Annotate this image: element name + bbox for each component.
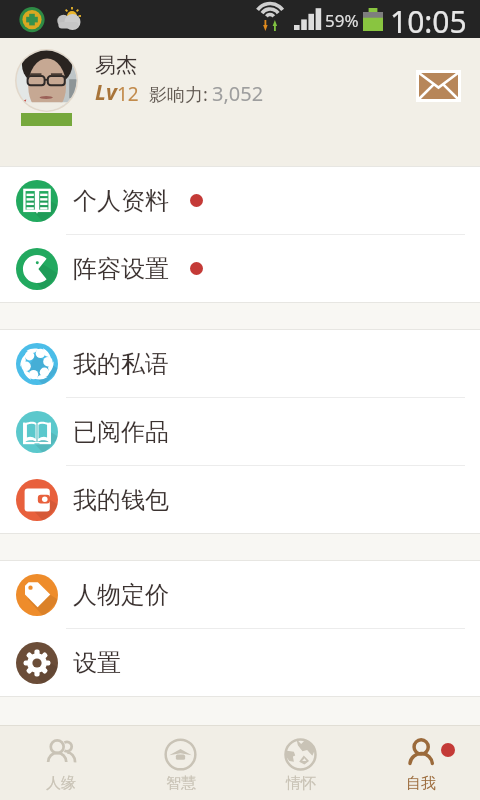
- button[interactable]: 个人资料: [0, 167, 480, 234]
- staticText: 阵容设置: [73, 254, 169, 284]
- staticText: 影响力:: [149, 82, 208, 107]
- staticText: 智慧: [166, 774, 196, 793]
- staticText: 情怀: [286, 774, 316, 793]
- staticText: 设置: [73, 648, 121, 678]
- staticText: 个人资料: [73, 186, 169, 216]
- button[interactable]: 设置: [0, 629, 480, 696]
- staticText: 易杰: [95, 52, 137, 78]
- staticText: 59%: [325, 9, 359, 32]
- button[interactable]: 阵容设置: [0, 235, 480, 302]
- staticText: 10:05: [390, 1, 467, 39]
- button[interactable]: Messages: [410, 61, 466, 111]
- button[interactable]: 已阅作品: [0, 398, 480, 465]
- staticText: 已阅作品: [73, 417, 169, 447]
- staticText: Lv: [95, 78, 117, 107]
- staticText: 我的私语: [73, 349, 169, 379]
- staticText: 我的钱包: [73, 485, 169, 515]
- staticText: 自我: [406, 774, 436, 793]
- staticText: 3,052: [212, 80, 264, 107]
- button[interactable]: Profile photo: [15, 49, 78, 112]
- staticText: 人缘: [46, 774, 76, 793]
- button[interactable]: 我的钱包: [0, 466, 480, 533]
- button[interactable]: 人物定价: [0, 561, 480, 628]
- button[interactable]: 智慧: [120, 726, 240, 800]
- button[interactable]: 我的私语: [0, 330, 480, 397]
- button[interactable]: 人缘: [0, 726, 120, 800]
- staticText: 12: [117, 81, 139, 107]
- staticText: 人物定价: [73, 580, 169, 610]
- button[interactable]: 自我: [360, 726, 480, 800]
- button[interactable]: 情怀: [240, 726, 360, 800]
